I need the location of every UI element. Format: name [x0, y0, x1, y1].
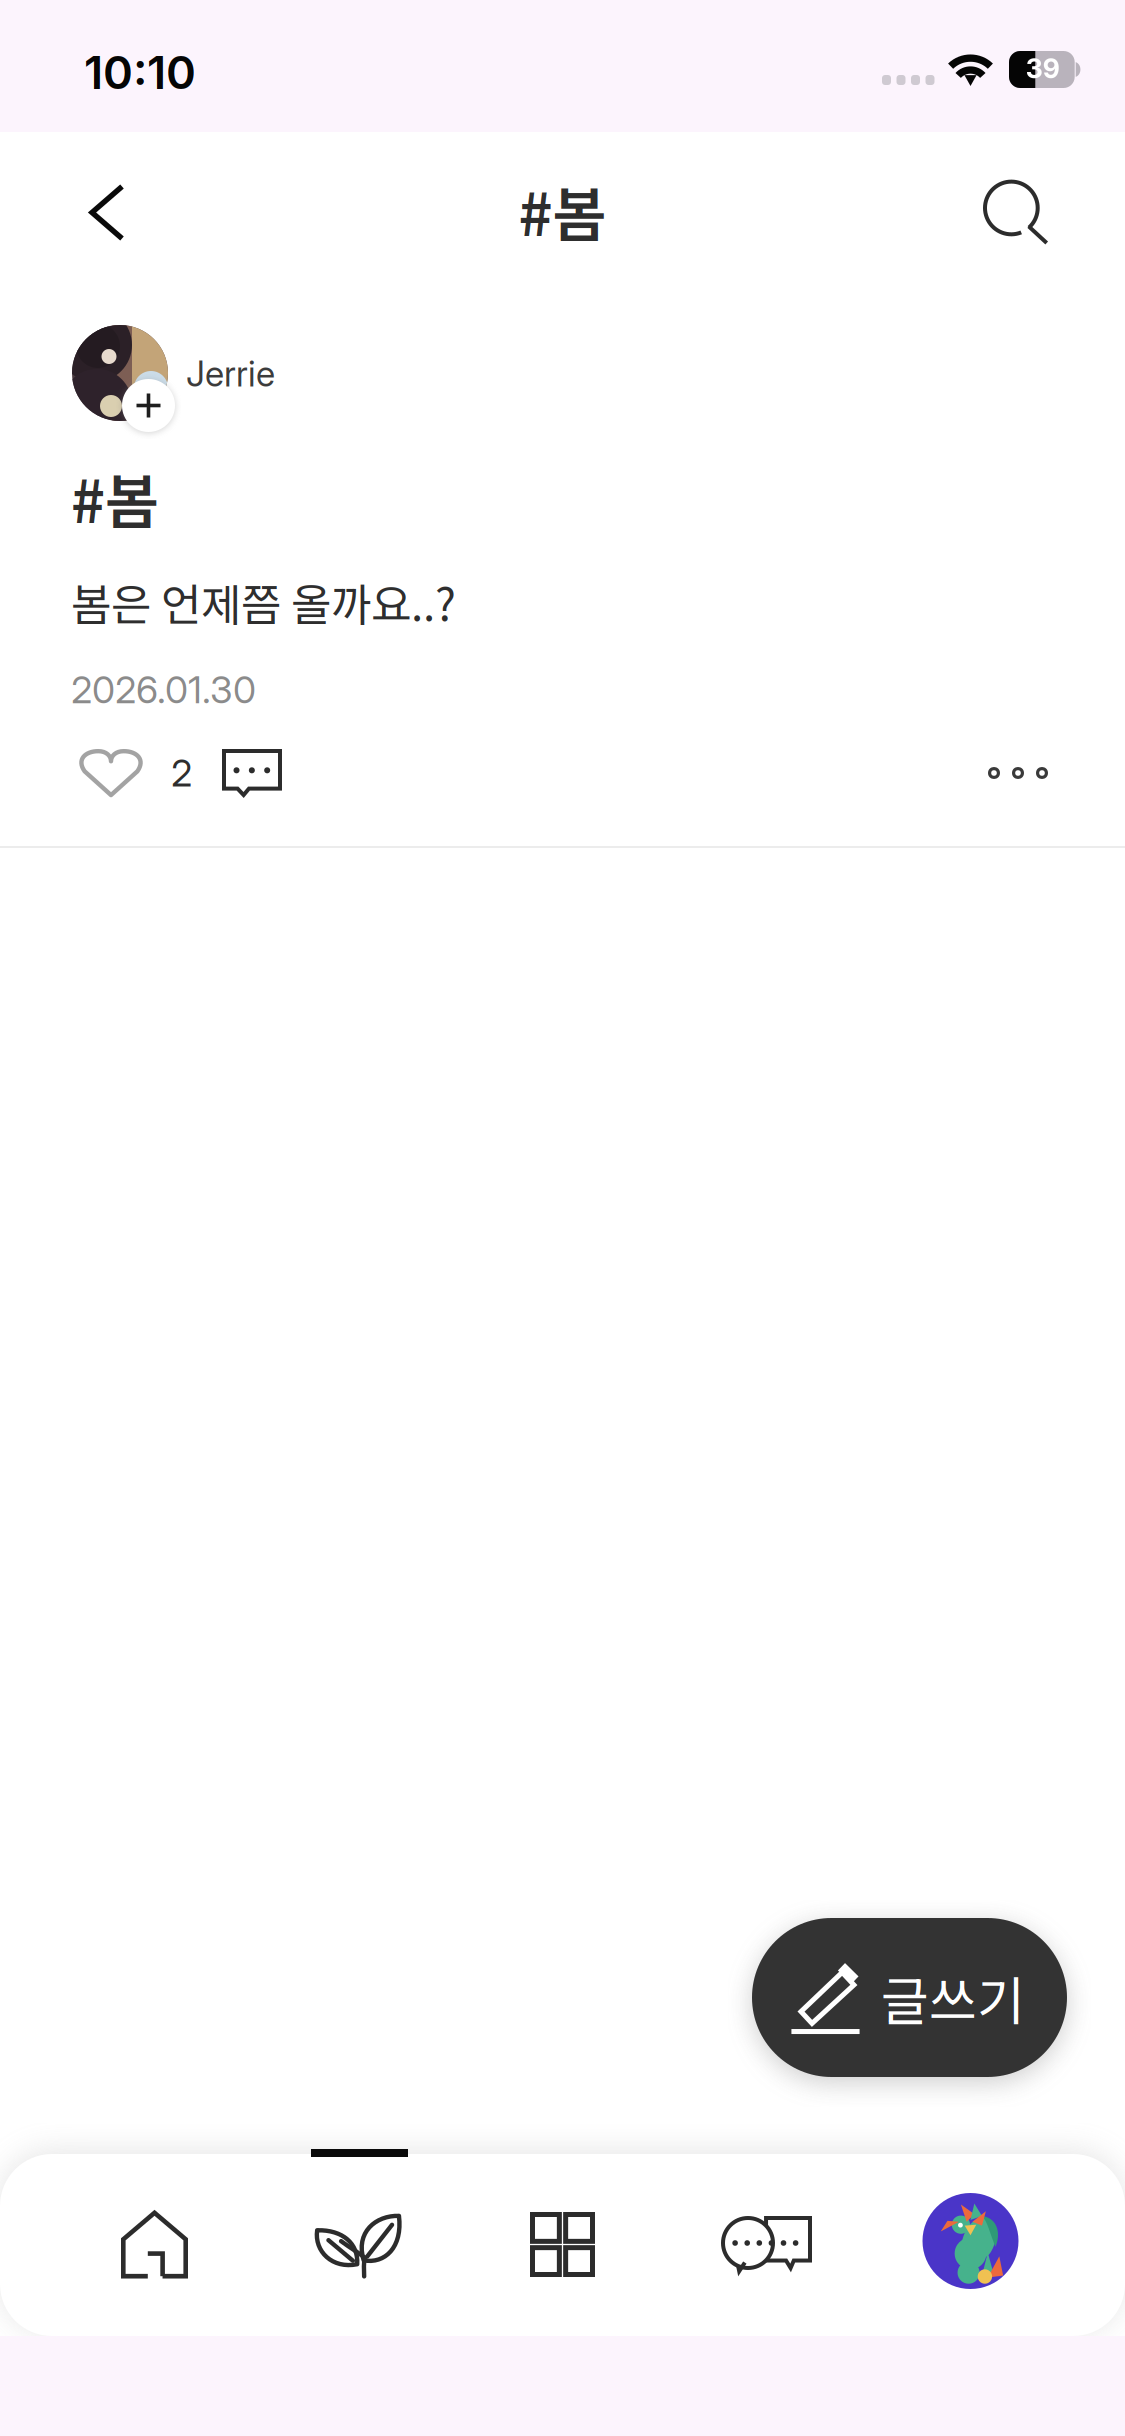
staticText: #봄: [518, 168, 606, 253]
button[interactable]: 글쓰기: [752, 1918, 1067, 2077]
button[interactable]: Profile: [868, 2154, 1072, 2336]
button[interactable]: Search: [931, 132, 1101, 293]
staticText: 10:10: [84, 45, 196, 100]
button[interactable]: More options: [960, 739, 1076, 807]
staticText: 봄은 언제쯤 올까요..?: [71, 570, 456, 634]
staticText: 39: [1026, 52, 1060, 85]
button[interactable]: Feed: [256, 2154, 460, 2336]
staticText: 2: [171, 750, 192, 796]
button[interactable]: Comments: [192, 727, 292, 819]
staticText: 2026.01.30: [71, 667, 256, 712]
button[interactable]: Jerrie: [0, 325, 1125, 435]
button[interactable]: Categories: [460, 2154, 664, 2336]
button[interactable]: Messages: [664, 2154, 868, 2336]
staticText: Jerrie: [186, 353, 275, 395]
staticText: 글쓰기: [881, 1960, 1025, 2035]
button[interactable]: Like: [70, 727, 152, 819]
staticText: #봄: [71, 455, 159, 540]
button[interactable]: Home: [52, 2154, 256, 2336]
button[interactable]: Back: [22, 132, 192, 293]
